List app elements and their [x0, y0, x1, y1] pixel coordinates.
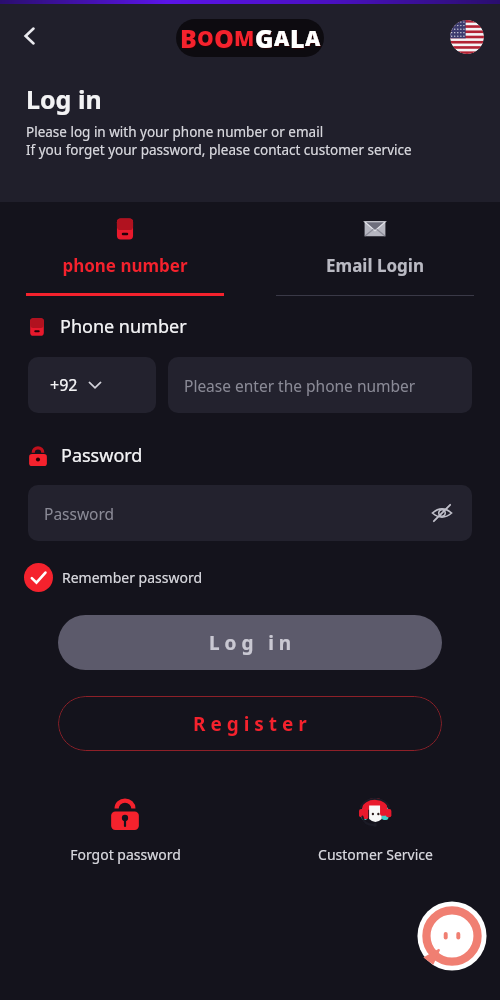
button[interactable]: Please enter the phone number [168, 357, 472, 413]
staticText: L [290, 21, 305, 55]
staticText: Email Login [326, 254, 424, 277]
button[interactable]: L o g i n [58, 615, 442, 670]
staticText: Customer Service [318, 845, 433, 864]
staticText: M [234, 24, 255, 53]
button[interactable]: Chat support [416, 900, 488, 972]
staticText: L o g i n [209, 630, 292, 656]
staticText: Password [44, 503, 115, 524]
staticText: Remember password [62, 568, 203, 587]
button[interactable]: phone number [0, 202, 250, 296]
button[interactable]: R e g i s t e r [58, 696, 442, 751]
button[interactable]: Remember password [24, 563, 203, 592]
button[interactable]: Password [28, 485, 472, 541]
staticText: If you forget your password, please cont… [26, 141, 412, 159]
staticText: Password [61, 443, 143, 468]
staticText: O [214, 21, 234, 55]
staticText: A [306, 25, 322, 54]
button[interactable]: Language [450, 20, 484, 54]
button[interactable]: Forgot password [0, 793, 250, 864]
staticText: L [291, 22, 306, 56]
staticText: B [180, 21, 197, 55]
staticText: B [181, 22, 198, 56]
staticText: A [274, 24, 290, 53]
staticText: M [235, 25, 256, 54]
staticText: G [256, 22, 275, 56]
button[interactable]: +92 [28, 357, 156, 413]
staticText: A [275, 25, 291, 54]
staticText: O [197, 24, 214, 53]
button[interactable]: Email Login [250, 202, 500, 296]
button[interactable]: Back [8, 14, 52, 58]
staticText: O [215, 22, 235, 56]
staticText: phone number [62, 254, 188, 277]
staticText: A [305, 24, 321, 53]
staticText: O [198, 25, 215, 54]
button[interactable]: Show password [426, 497, 458, 529]
staticText: Log in [26, 82, 102, 116]
button[interactable]: Customer Service [250, 793, 500, 864]
staticText: Please enter the phone number [184, 375, 416, 396]
staticText: Please log in with your phone number or … [26, 123, 324, 141]
staticText: R e g i s t e r [193, 711, 307, 737]
staticText: Forgot password [70, 845, 181, 864]
staticText: +92 [50, 374, 78, 396]
staticText: G [255, 21, 274, 55]
staticText: Phone number [60, 314, 187, 339]
